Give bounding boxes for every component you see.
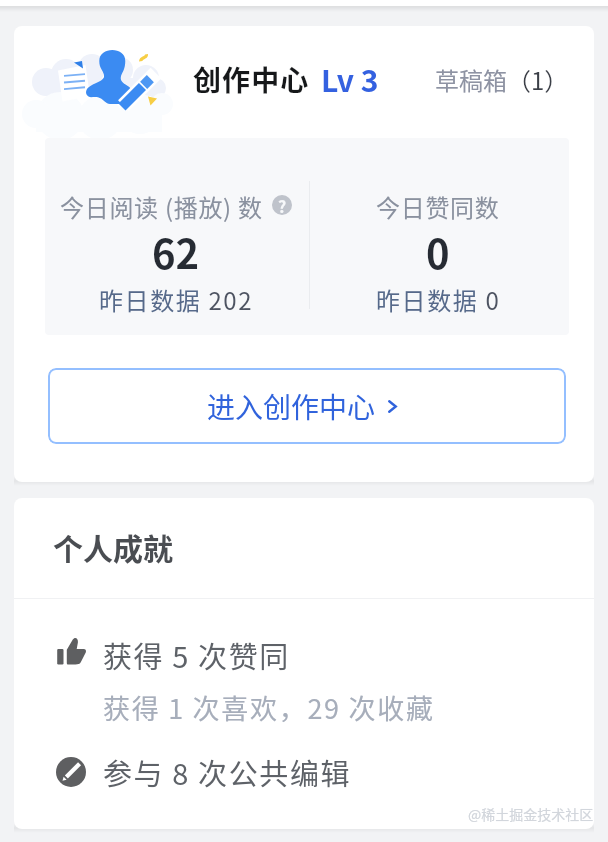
button[interactable]: 获得 5 次赞同 [56,634,594,727]
staticText: ? [278,195,287,214]
staticText: 昨日数据 0 [376,282,501,317]
staticText: Lv 3 [321,57,379,100]
staticText: 进入创作中心 [207,386,376,427]
staticText: 0 [426,223,450,281]
staticText: 草稿箱（1） [435,62,569,97]
staticText: 获得 1 次喜欢，29 次收藏 [103,688,435,727]
button[interactable]: 参与 8 次公共编辑 [56,751,594,793]
staticText: 创作中心 [193,59,310,100]
staticText: @稀土掘金技术社区 [468,804,594,824]
staticText: 昨日数据 202 [99,282,254,317]
button[interactable]: 草稿箱（1） [435,62,569,97]
staticText: 获得 5 次赞同 [103,634,290,676]
staticText: 今日赞同数 [376,189,500,224]
button[interactable]: Help [272,195,292,215]
staticText: 62 [152,223,200,281]
button[interactable]: 进入创作中心 [48,368,566,444]
staticText: 个人成就 [53,525,173,568]
staticText: 参与 8 次公共编辑 [103,751,352,793]
staticText: 今日阅读 (播放) 数 [60,189,263,224]
